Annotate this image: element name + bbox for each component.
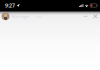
button[interactable]: Messages xyxy=(0,11,100,21)
staticText: 9:27 xyxy=(5,2,15,9)
staticText: now xyxy=(35,14,42,19)
staticText: Messages xyxy=(11,14,29,19)
